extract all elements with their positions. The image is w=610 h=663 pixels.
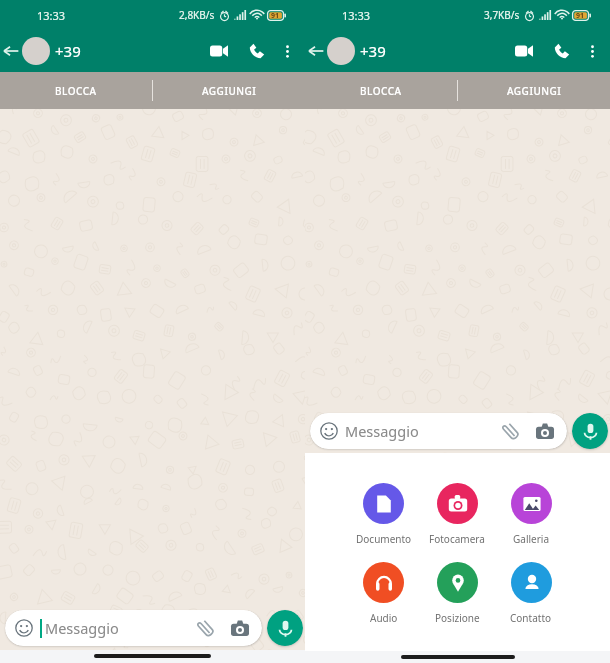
button[interactable]: More options xyxy=(273,37,301,65)
button[interactable]: Contatto xyxy=(494,562,568,625)
button[interactable]: AGGIUNGI xyxy=(458,72,610,109)
staticText: AGGIUNGI xyxy=(507,84,562,98)
button[interactable]: Voice call xyxy=(242,36,272,66)
staticText: 3,7KB/s xyxy=(484,8,520,22)
staticText: 2,8KB/s xyxy=(179,8,215,22)
button[interactable]: Fotocamera xyxy=(420,483,494,546)
staticText: 91 xyxy=(271,11,280,21)
button[interactable]: Video call xyxy=(203,35,235,67)
button[interactable]: BLOCCA xyxy=(305,72,457,109)
staticText: Fotocamera xyxy=(429,532,485,546)
staticText: 13:33 xyxy=(37,8,66,23)
staticText: BLOCCA xyxy=(360,84,402,98)
button[interactable]: More options xyxy=(578,37,606,65)
button[interactable]: Posizione xyxy=(420,562,494,625)
staticText: +39 xyxy=(360,41,386,61)
button[interactable]: Galleria xyxy=(494,483,568,546)
button[interactable]: Record voice message xyxy=(267,610,303,646)
button[interactable]: AGGIUNGI xyxy=(153,72,305,109)
button[interactable]: Documento xyxy=(347,483,420,546)
staticText: Messaggio xyxy=(45,618,119,638)
staticText: +39 xyxy=(55,41,81,61)
button[interactable]: Audio xyxy=(347,562,420,625)
staticText: Posizione xyxy=(435,611,480,625)
button[interactable]: Back xyxy=(305,34,327,68)
staticText: 13:33 xyxy=(342,8,371,23)
button[interactable]: Video call xyxy=(508,35,540,67)
button[interactable]: Back xyxy=(0,34,22,68)
staticText: 91 xyxy=(576,11,585,21)
staticText: Audio xyxy=(370,611,398,625)
button[interactable]: Record voice message xyxy=(572,413,608,449)
staticText: Messaggio xyxy=(345,421,419,441)
staticText: Contatto xyxy=(510,611,552,625)
staticText: AGGIUNGI xyxy=(202,84,257,98)
staticText: Documento xyxy=(356,532,412,546)
staticText: Galleria xyxy=(513,532,550,546)
staticText: BLOCCA xyxy=(55,84,97,98)
button[interactable]: Messaggio xyxy=(310,413,567,449)
button[interactable]: BLOCCA xyxy=(0,72,152,109)
button[interactable]: Messaggio xyxy=(5,610,262,646)
button[interactable]: Voice call xyxy=(547,36,577,66)
